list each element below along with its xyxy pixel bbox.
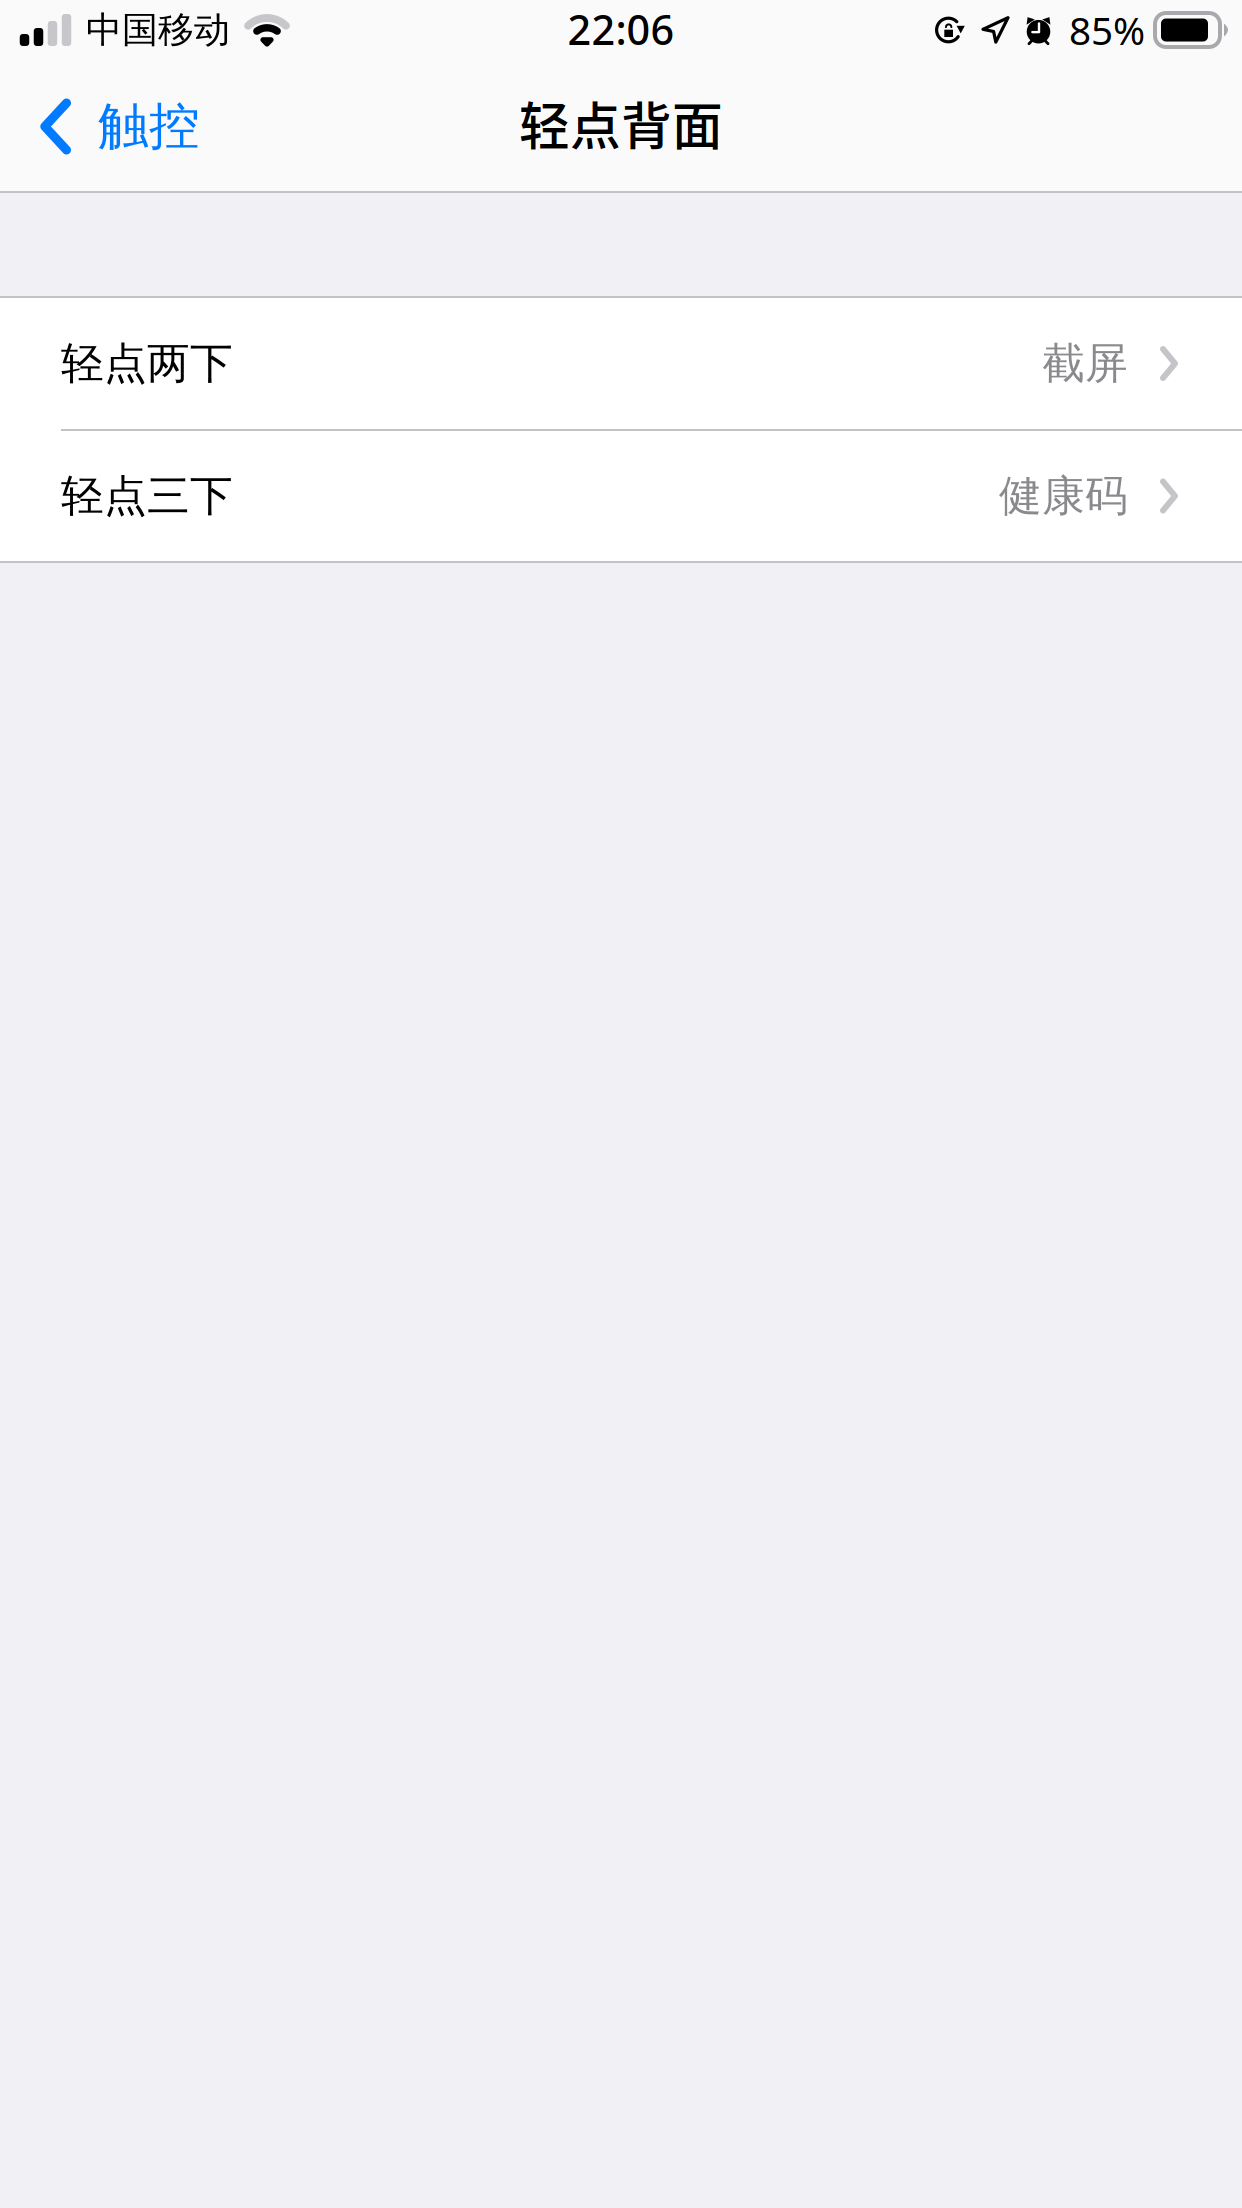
staticText: 中国移动: [86, 8, 230, 52]
staticText: 轻点背面: [519, 86, 723, 160]
button[interactable]: 轻点两下: [0, 298, 1242, 429]
staticText: 健康码: [999, 470, 1128, 522]
staticText: 截屏: [1042, 337, 1128, 390]
staticText: 85%: [1069, 4, 1145, 56]
staticText: 触控: [98, 95, 200, 158]
button[interactable]: 轻点三下: [0, 431, 1242, 561]
staticText: 22:06: [567, 2, 674, 56]
staticText: 轻点两下: [61, 337, 233, 390]
button[interactable]: 返回 触控: [0, 60, 220, 192]
staticText: 轻点三下: [61, 470, 233, 522]
